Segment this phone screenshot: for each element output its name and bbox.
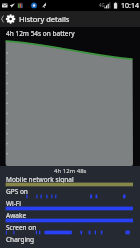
staticText: Awake [6,211,27,220]
staticText: Mobile network signal [6,175,74,184]
staticText: History details [19,14,70,24]
button[interactable]: Awake [0,211,140,223]
staticText: Charging [6,235,35,244]
button[interactable]: Charging [0,235,140,247]
button[interactable]: GPS on [0,187,140,199]
staticText: GPS on [6,187,28,196]
staticText: 4h 12m 54s on battery [6,29,75,38]
staticText: Wi-Fi [6,199,21,208]
button[interactable]: Navigate up [0,11,19,27]
button[interactable]: Screen on [0,223,140,235]
staticText: 4h 12m 48s [54,167,87,175]
staticText: 4G [99,2,105,8]
button[interactable]: Mobile network signal [0,175,140,187]
button[interactable]: Wi-Fi [0,199,140,211]
staticText: 10:14 [121,1,139,11]
staticText: Screen on [6,223,37,232]
